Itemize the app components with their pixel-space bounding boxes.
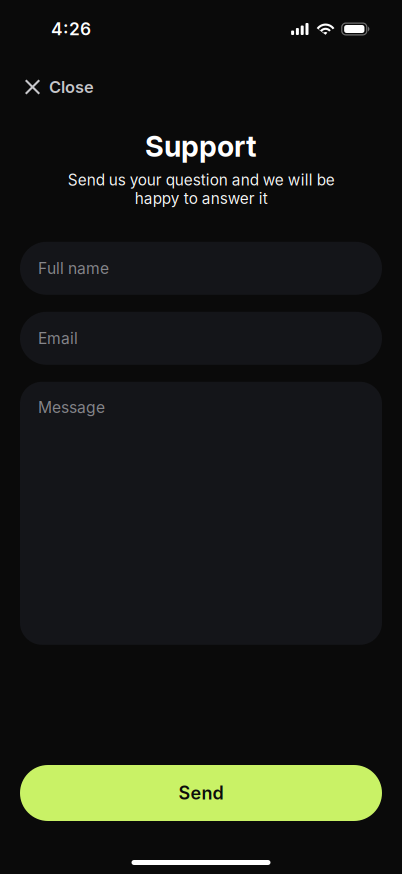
button[interactable]: Send — [20, 765, 382, 821]
staticText: Full name — [38, 259, 109, 278]
button[interactable]: Close — [17, 65, 102, 109]
staticText: Message — [38, 398, 105, 417]
staticText: Send us your question and we will be hap… — [67, 171, 334, 208]
button[interactable]: Full name — [20, 242, 382, 295]
staticText: Send — [178, 782, 223, 804]
staticText: Close — [49, 77, 94, 97]
button[interactable]: Message — [20, 382, 382, 645]
staticText: 4:26 — [51, 18, 91, 39]
staticText: Support — [145, 129, 257, 164]
button[interactable]: Email — [20, 312, 382, 365]
staticText: Email — [38, 329, 78, 348]
